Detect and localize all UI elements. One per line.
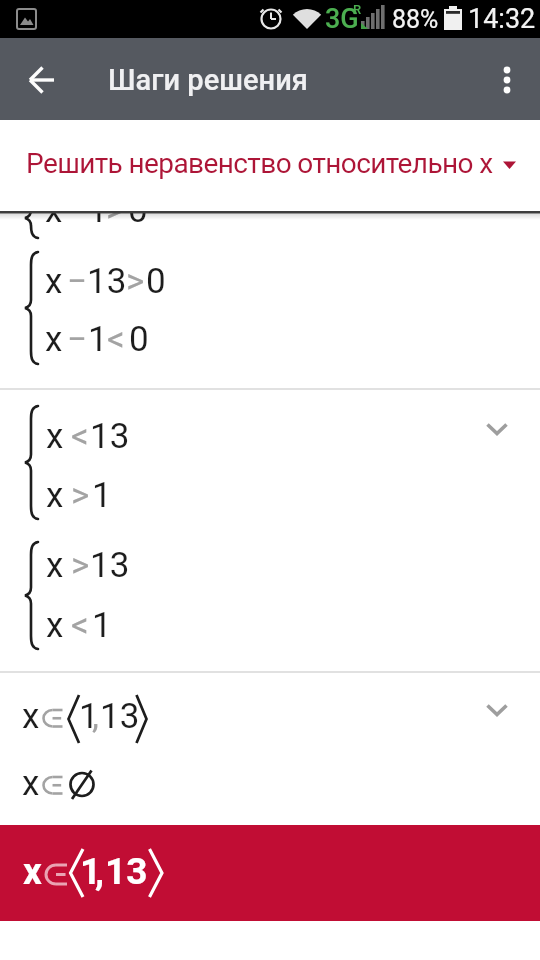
staticText: < [71, 605, 89, 646]
staticText: 1 [88, 190, 108, 231]
button[interactable] [483, 56, 531, 104]
staticText: R [353, 2, 362, 17]
staticText: > [71, 545, 90, 586]
staticText: x [46, 545, 64, 586]
button[interactable] [18, 56, 66, 104]
staticText: , [92, 696, 99, 737]
button[interactable] [0, 120, 540, 211]
staticText: > [126, 261, 145, 302]
staticText: 0 [128, 190, 148, 231]
staticText: 1 [92, 475, 112, 516]
staticText: 3G [325, 3, 359, 35]
staticText: Шаги решения [108, 63, 308, 97]
staticText: 1 [79, 696, 99, 737]
staticText: − [67, 261, 88, 302]
staticText: x [23, 850, 42, 893]
staticText: − [67, 190, 88, 231]
staticText: 13 [105, 850, 148, 893]
staticText: 88% [392, 5, 439, 34]
staticText: 13 [100, 696, 140, 737]
staticText: x [22, 763, 40, 804]
staticText: < [107, 319, 125, 360]
staticText: , [95, 850, 105, 893]
staticText: 0 [129, 319, 149, 360]
staticText: x [45, 261, 63, 302]
button[interactable] [0, 825, 540, 921]
staticText: x [46, 605, 64, 646]
staticText: 1 [80, 850, 102, 893]
staticText: − [67, 319, 88, 360]
staticText: > [71, 475, 90, 516]
staticText: x [46, 475, 64, 516]
staticText: 1 [92, 605, 112, 646]
staticText: < [71, 416, 89, 457]
staticText: 0 [146, 261, 166, 302]
staticText: x [22, 696, 40, 737]
staticText: Решить неравенство относительно x [26, 147, 493, 180]
staticText: x [46, 416, 64, 457]
button[interactable] [475, 688, 519, 732]
staticText: x [45, 319, 63, 360]
staticText: 14:32 [468, 3, 536, 35]
staticText: x [45, 190, 63, 231]
staticText: > [106, 190, 125, 231]
staticText: 13 [90, 545, 130, 586]
staticText: 13 [90, 416, 130, 457]
staticText: 1 [88, 319, 108, 360]
staticText: 13 [87, 261, 127, 302]
button[interactable] [475, 407, 519, 451]
